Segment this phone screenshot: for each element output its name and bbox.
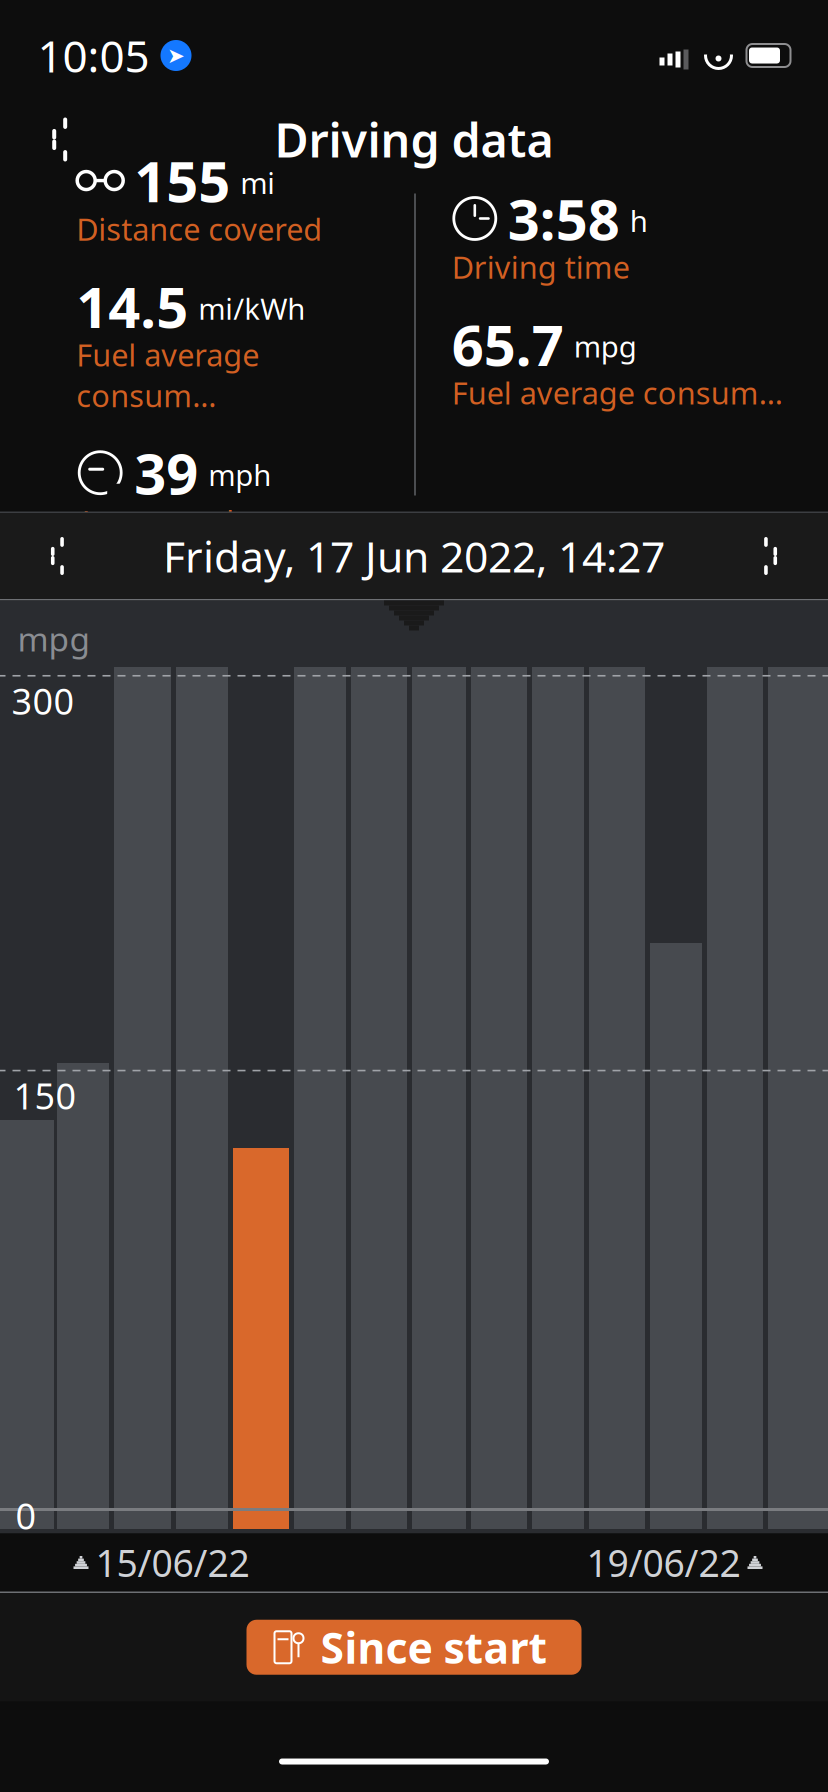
button[interactable]: Back xyxy=(19,101,95,177)
staticText: 300 xyxy=(11,677,74,725)
staticText: 3:58 xyxy=(508,181,620,256)
staticText: mph xyxy=(208,455,271,494)
staticText: Distance covered xyxy=(76,209,322,249)
staticText: 10:05 xyxy=(37,26,149,85)
staticText: 65.7 xyxy=(452,307,564,381)
staticText: h xyxy=(630,201,648,240)
staticText: Driving time xyxy=(452,246,630,287)
staticText: 14.5 xyxy=(76,269,188,343)
staticText: Fuel average consum... xyxy=(76,334,259,416)
staticText: mpg xyxy=(17,616,90,661)
staticText: Driving data xyxy=(274,108,553,170)
button[interactable]: Previous day xyxy=(11,513,99,599)
staticText: 39 xyxy=(134,435,198,510)
staticText: 15/06/22 xyxy=(95,1538,249,1587)
staticText: mi/kWh xyxy=(198,289,305,328)
button[interactable]: Since start xyxy=(246,1620,581,1675)
staticText: 19/06/22 xyxy=(586,1538,740,1587)
staticText: Since start xyxy=(320,1619,547,1676)
staticText: 150 xyxy=(13,1072,76,1119)
staticText: mi xyxy=(240,163,275,202)
staticText: Avg. speed xyxy=(76,501,234,541)
staticText: mpg xyxy=(574,327,637,366)
staticText: Fuel average consum... xyxy=(452,372,783,413)
staticText: ➤ xyxy=(167,43,185,68)
staticText: 0 xyxy=(15,1492,36,1539)
staticText: Friday, 17 Jun 2022, 14:27 xyxy=(163,528,665,584)
staticText: 155 xyxy=(134,143,230,218)
button[interactable]: Next day xyxy=(728,513,816,599)
